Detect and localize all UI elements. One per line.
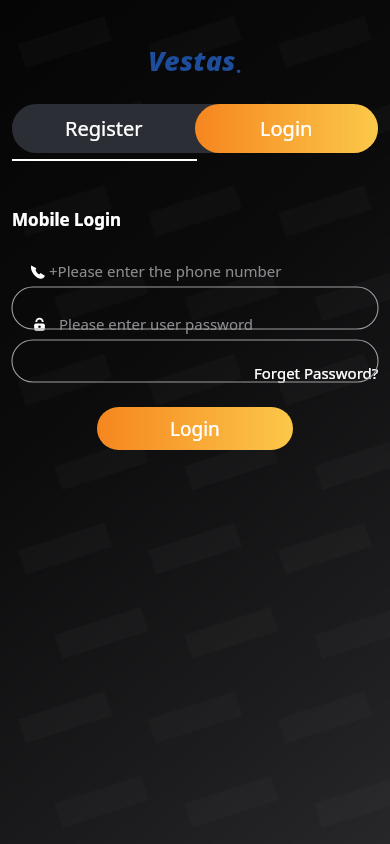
staticText: Login: [260, 115, 313, 142]
staticText: Mobile Login: [12, 208, 122, 231]
staticText: .: [236, 54, 242, 79]
button[interactable]: Forget Password?: [243, 360, 390, 386]
button[interactable]: Register: [12, 104, 195, 153]
staticText: Vestas: [148, 42, 236, 79]
staticText: Forget Password?: [254, 363, 379, 383]
other: Password: [33, 318, 46, 331]
button[interactable]: Login: [195, 104, 378, 153]
staticText: Login: [170, 416, 220, 442]
button[interactable]: Password: [12, 303, 378, 345]
staticText: +Please enter the phone number: [49, 261, 282, 281]
staticText: Please enter user password: [59, 314, 254, 334]
other: Phone: [30, 264, 45, 279]
button[interactable]: Login: [97, 407, 293, 450]
button[interactable]: Phone: [12, 250, 378, 292]
staticText: Register: [65, 115, 143, 142]
